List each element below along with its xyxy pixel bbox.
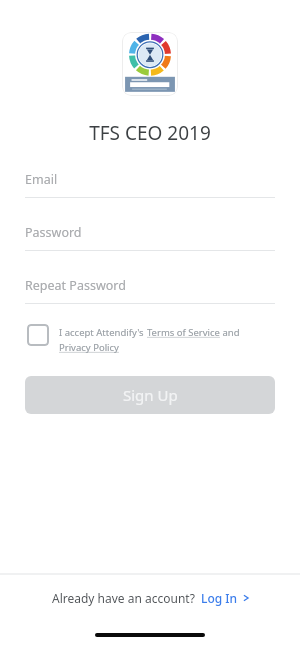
button[interactable]: Sign Up: [25, 376, 275, 414]
button[interactable]: Terms of Service: [147, 326, 220, 339]
other: Accept terms checkbox: [27, 324, 49, 346]
staticText: TFS CEO 2019: [89, 120, 211, 146]
button[interactable]: Accept terms checkbox: [0, 322, 300, 356]
staticText: Already have an account?: [52, 590, 195, 606]
button[interactable]: Log In: [201, 590, 249, 606]
staticText: Email: [25, 171, 58, 188]
staticText: Sign Up: [123, 385, 178, 405]
staticText: I accept Attendify's: [59, 326, 147, 339]
staticText: and: [220, 326, 240, 339]
staticText: Repeat Password: [25, 277, 126, 294]
button[interactable]: Password: [0, 224, 300, 251]
staticText: Password: [25, 224, 82, 241]
button[interactable]: Privacy Policy: [59, 341, 119, 354]
staticText: Log In: [201, 590, 238, 606]
button[interactable]: Email: [0, 171, 300, 198]
button[interactable]: Repeat Password: [0, 277, 300, 304]
